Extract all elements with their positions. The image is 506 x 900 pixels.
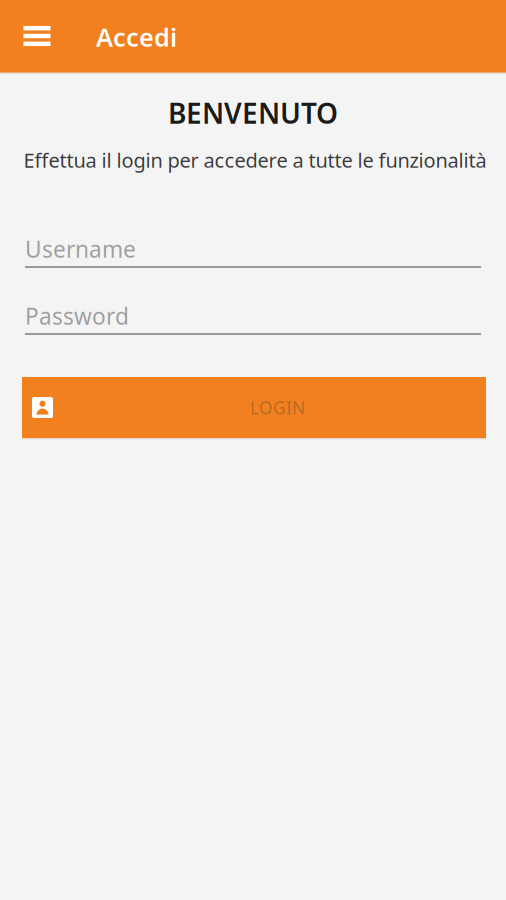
staticText: LOGIN <box>250 396 305 419</box>
button[interactable]: Password <box>25 301 481 335</box>
button[interactable]: LOGIN <box>22 377 486 438</box>
staticText: BENVENUTO <box>168 94 338 132</box>
staticText: Accedi <box>96 20 177 54</box>
button[interactable]: Username <box>25 234 481 268</box>
staticText: Effettua il login per accedere a tutte l… <box>23 147 486 173</box>
button[interactable]: Menu <box>10 0 64 71</box>
staticText: Username <box>25 234 136 264</box>
staticText: Password <box>25 301 129 331</box>
